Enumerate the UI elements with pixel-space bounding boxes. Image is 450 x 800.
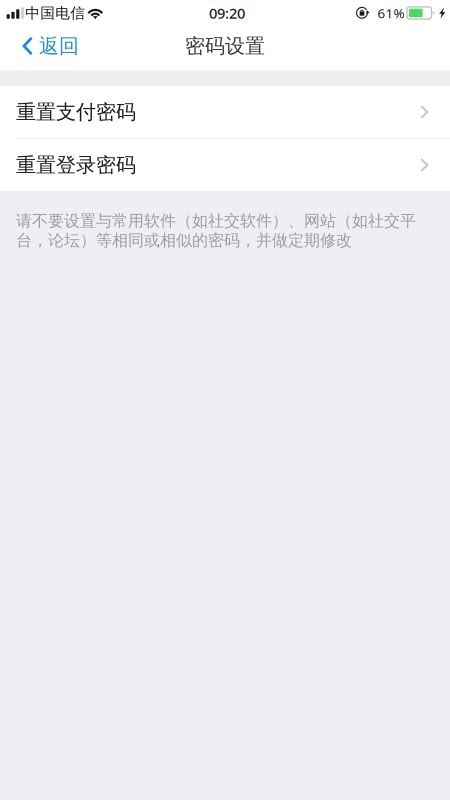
button[interactable]: 重置登录密码	[0, 139, 450, 191]
staticText: 请不要设置与常用软件（如社交软件）、网站（如社交平台，论坛）等相同或相似的密码，…	[16, 211, 416, 250]
staticText: 61%	[377, 4, 404, 22]
staticText: 09:20	[209, 3, 245, 23]
staticText: 密码设置	[185, 34, 265, 58]
button[interactable]: 重置支付密码	[0, 86, 450, 138]
button[interactable]: 返回	[0, 26, 89, 66]
staticText: 重置登录密码	[16, 153, 136, 177]
staticText: 重置支付密码	[16, 100, 136, 124]
staticText: 返回	[39, 34, 79, 58]
staticText: 中国电信	[25, 4, 85, 22]
